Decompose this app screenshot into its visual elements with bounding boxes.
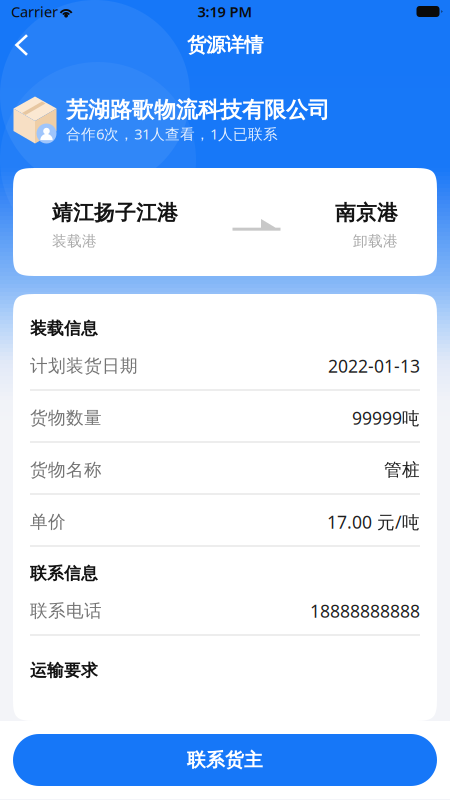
staticText: 芜湖路歌物流科技有限公司 <box>66 96 330 124</box>
staticText: 合作6次，31人查看，1人已联系 <box>66 124 278 144</box>
staticText: 运输要求 <box>30 660 98 681</box>
staticText: 17.00 元/吨 <box>327 510 420 534</box>
staticText: 联系信息 <box>30 563 98 584</box>
staticText: 2022-01-13 <box>328 354 420 378</box>
staticText: 靖江扬子江港 <box>52 200 178 226</box>
staticText: 计划装货日期 <box>30 355 138 377</box>
staticText: 装载港 <box>52 232 97 250</box>
staticText: 卸载港 <box>353 232 398 250</box>
staticText: 联系电话 <box>30 600 102 622</box>
staticText: 货物数量 <box>30 407 102 429</box>
staticText: 装载信息 <box>30 318 98 339</box>
staticText: 货物名称 <box>30 459 102 481</box>
staticText: 单价 <box>30 511 66 533</box>
staticText: 18888888888 <box>310 599 420 623</box>
staticText: 南京港 <box>335 200 398 226</box>
staticText: 货源详情 <box>187 33 263 57</box>
staticText: 99999吨 <box>352 406 420 430</box>
staticText: 联系货主 <box>187 748 263 772</box>
staticText: Carrier <box>11 1 58 21</box>
button[interactable]: 联系货主 <box>0 734 450 786</box>
staticText: 管桩 <box>384 459 420 481</box>
staticText: 3:19 PM <box>197 1 252 21</box>
button[interactable]: Back <box>0 23 44 67</box>
